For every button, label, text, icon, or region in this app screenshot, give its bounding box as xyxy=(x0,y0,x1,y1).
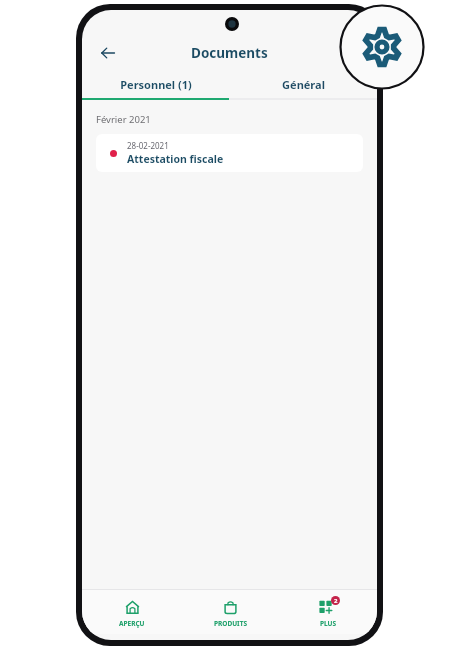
button[interactable]: Général xyxy=(229,70,377,98)
staticText: Général xyxy=(282,77,325,92)
staticText: PLUS xyxy=(320,619,337,628)
button[interactable]: 2 xyxy=(279,590,377,634)
staticText: APERÇU xyxy=(119,619,145,628)
staticText: 2 xyxy=(334,597,338,605)
staticText: Février 2021 xyxy=(96,113,151,126)
button[interactable]: Personnel (1) xyxy=(82,70,229,98)
button[interactable]: PRODUITS xyxy=(181,590,279,634)
button[interactable]: Back xyxy=(90,36,126,70)
staticText: Documents xyxy=(191,44,268,62)
staticText: Attestation fiscale xyxy=(127,152,224,166)
button[interactable]: 28-02-2021 xyxy=(96,134,363,172)
staticText: Personnel (1) xyxy=(120,77,192,92)
staticText: 28-02-2021 xyxy=(127,140,169,151)
staticText: PRODUITS xyxy=(214,619,247,628)
button[interactable]: Settings xyxy=(339,4,425,90)
button[interactable]: APERÇU xyxy=(82,590,181,634)
